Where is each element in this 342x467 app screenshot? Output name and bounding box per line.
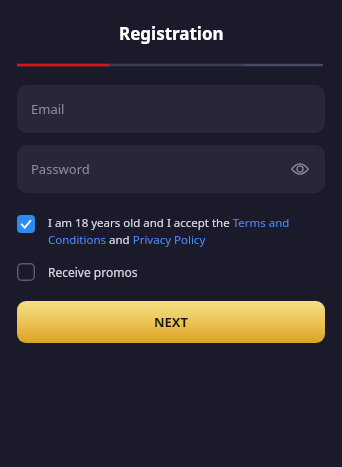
staticText: Password xyxy=(31,160,90,178)
staticText: Receive promos xyxy=(48,264,138,280)
staticText: Email xyxy=(31,100,65,118)
button[interactable]: Show password xyxy=(285,154,315,184)
button[interactable]: Password xyxy=(17,145,325,193)
button[interactable]: Receive promos xyxy=(17,263,325,281)
staticText: I am 18 years old and I accept the Terms… xyxy=(48,215,325,247)
button[interactable]: Email xyxy=(17,85,325,133)
button[interactable]: I am 18 years old and I accept the Terms… xyxy=(17,215,325,247)
staticText: NEXT xyxy=(154,313,189,331)
staticText: Registration xyxy=(119,22,224,45)
button[interactable]: NEXT xyxy=(17,301,325,343)
